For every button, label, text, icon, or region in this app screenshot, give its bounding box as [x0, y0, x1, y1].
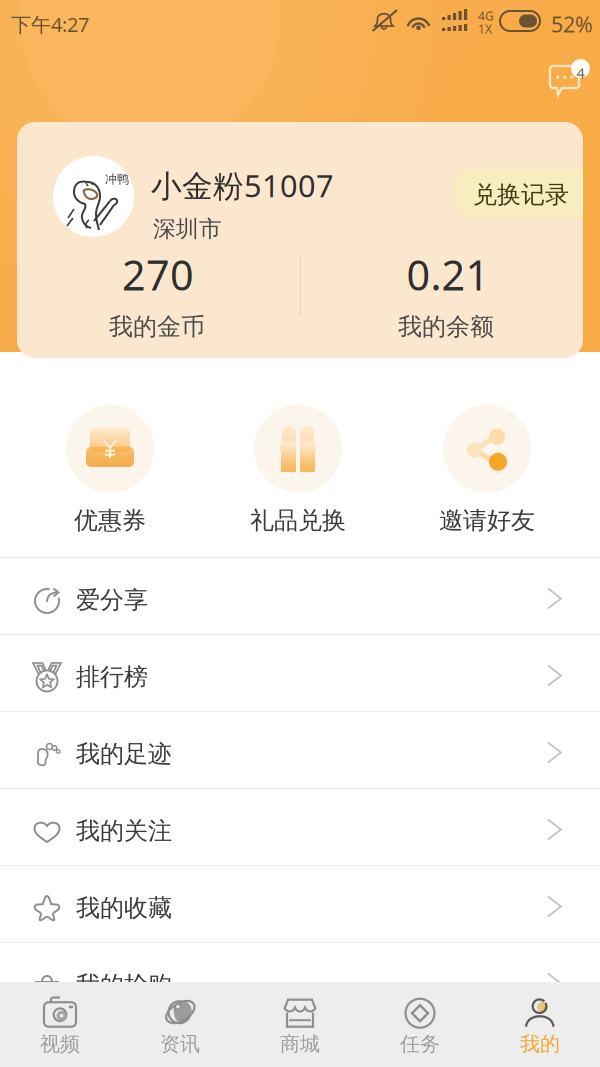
button[interactable]: 我的关注 — [0, 789, 600, 866]
button[interactable]: 我的抢购 — [0, 943, 600, 1020]
button[interactable]: 我的足迹 — [0, 712, 600, 789]
staticText: 冲鸭 — [105, 172, 129, 187]
staticText: 0.21 — [406, 247, 489, 302]
button[interactable]: 我的收藏 — [0, 866, 600, 943]
staticText: 礼品兑换 — [250, 506, 346, 535]
staticText: 270 — [122, 247, 194, 302]
staticText: 资讯 — [160, 1032, 200, 1056]
button[interactable]: 优惠券 — [30, 404, 190, 536]
button[interactable]: 爱分享 — [0, 558, 600, 635]
staticText: 商城 — [280, 1032, 320, 1056]
staticText: 我的抢购 — [76, 970, 172, 1000]
staticText: 我的关注 — [76, 816, 172, 846]
button[interactable]: 排行榜 — [0, 635, 600, 712]
staticText: 兑换记录 — [473, 180, 569, 209]
staticText: 1X — [478, 21, 492, 37]
staticText: 深圳市 — [153, 215, 222, 243]
staticText: 我的 — [520, 1032, 560, 1056]
staticText: 4 — [576, 63, 584, 82]
staticText: 4G — [478, 8, 494, 24]
staticText: 我的金币 — [109, 312, 205, 341]
staticText: 排行榜 — [76, 662, 148, 692]
button[interactable]: Messages — [547, 62, 595, 106]
button[interactable]: 资讯 — [120, 982, 240, 1067]
staticText: 视频 — [40, 1032, 80, 1056]
staticText: 我的余额 — [398, 312, 494, 341]
button[interactable]: 我的 — [480, 982, 600, 1067]
staticText: 任务 — [400, 1032, 440, 1056]
staticText: 优惠券 — [74, 506, 146, 535]
button[interactable]: 任务 — [360, 982, 480, 1067]
staticText: 邀请好友 — [439, 506, 535, 535]
staticText: 52% — [551, 10, 593, 38]
button[interactable]: 礼品兑换 — [218, 404, 378, 536]
button[interactable]: 商城 — [240, 982, 360, 1067]
button[interactable]: 邀请好友 — [407, 404, 567, 536]
staticText: 爱分享 — [76, 585, 148, 615]
staticText: 我的足迹 — [76, 739, 172, 769]
button[interactable]: 兑换记录 — [452, 167, 583, 219]
staticText: 我的收藏 — [76, 893, 172, 923]
staticText: 下午4:27 — [11, 11, 89, 38]
staticText: 小金粉51007 — [151, 165, 334, 206]
button[interactable]: 视频 — [0, 982, 120, 1067]
